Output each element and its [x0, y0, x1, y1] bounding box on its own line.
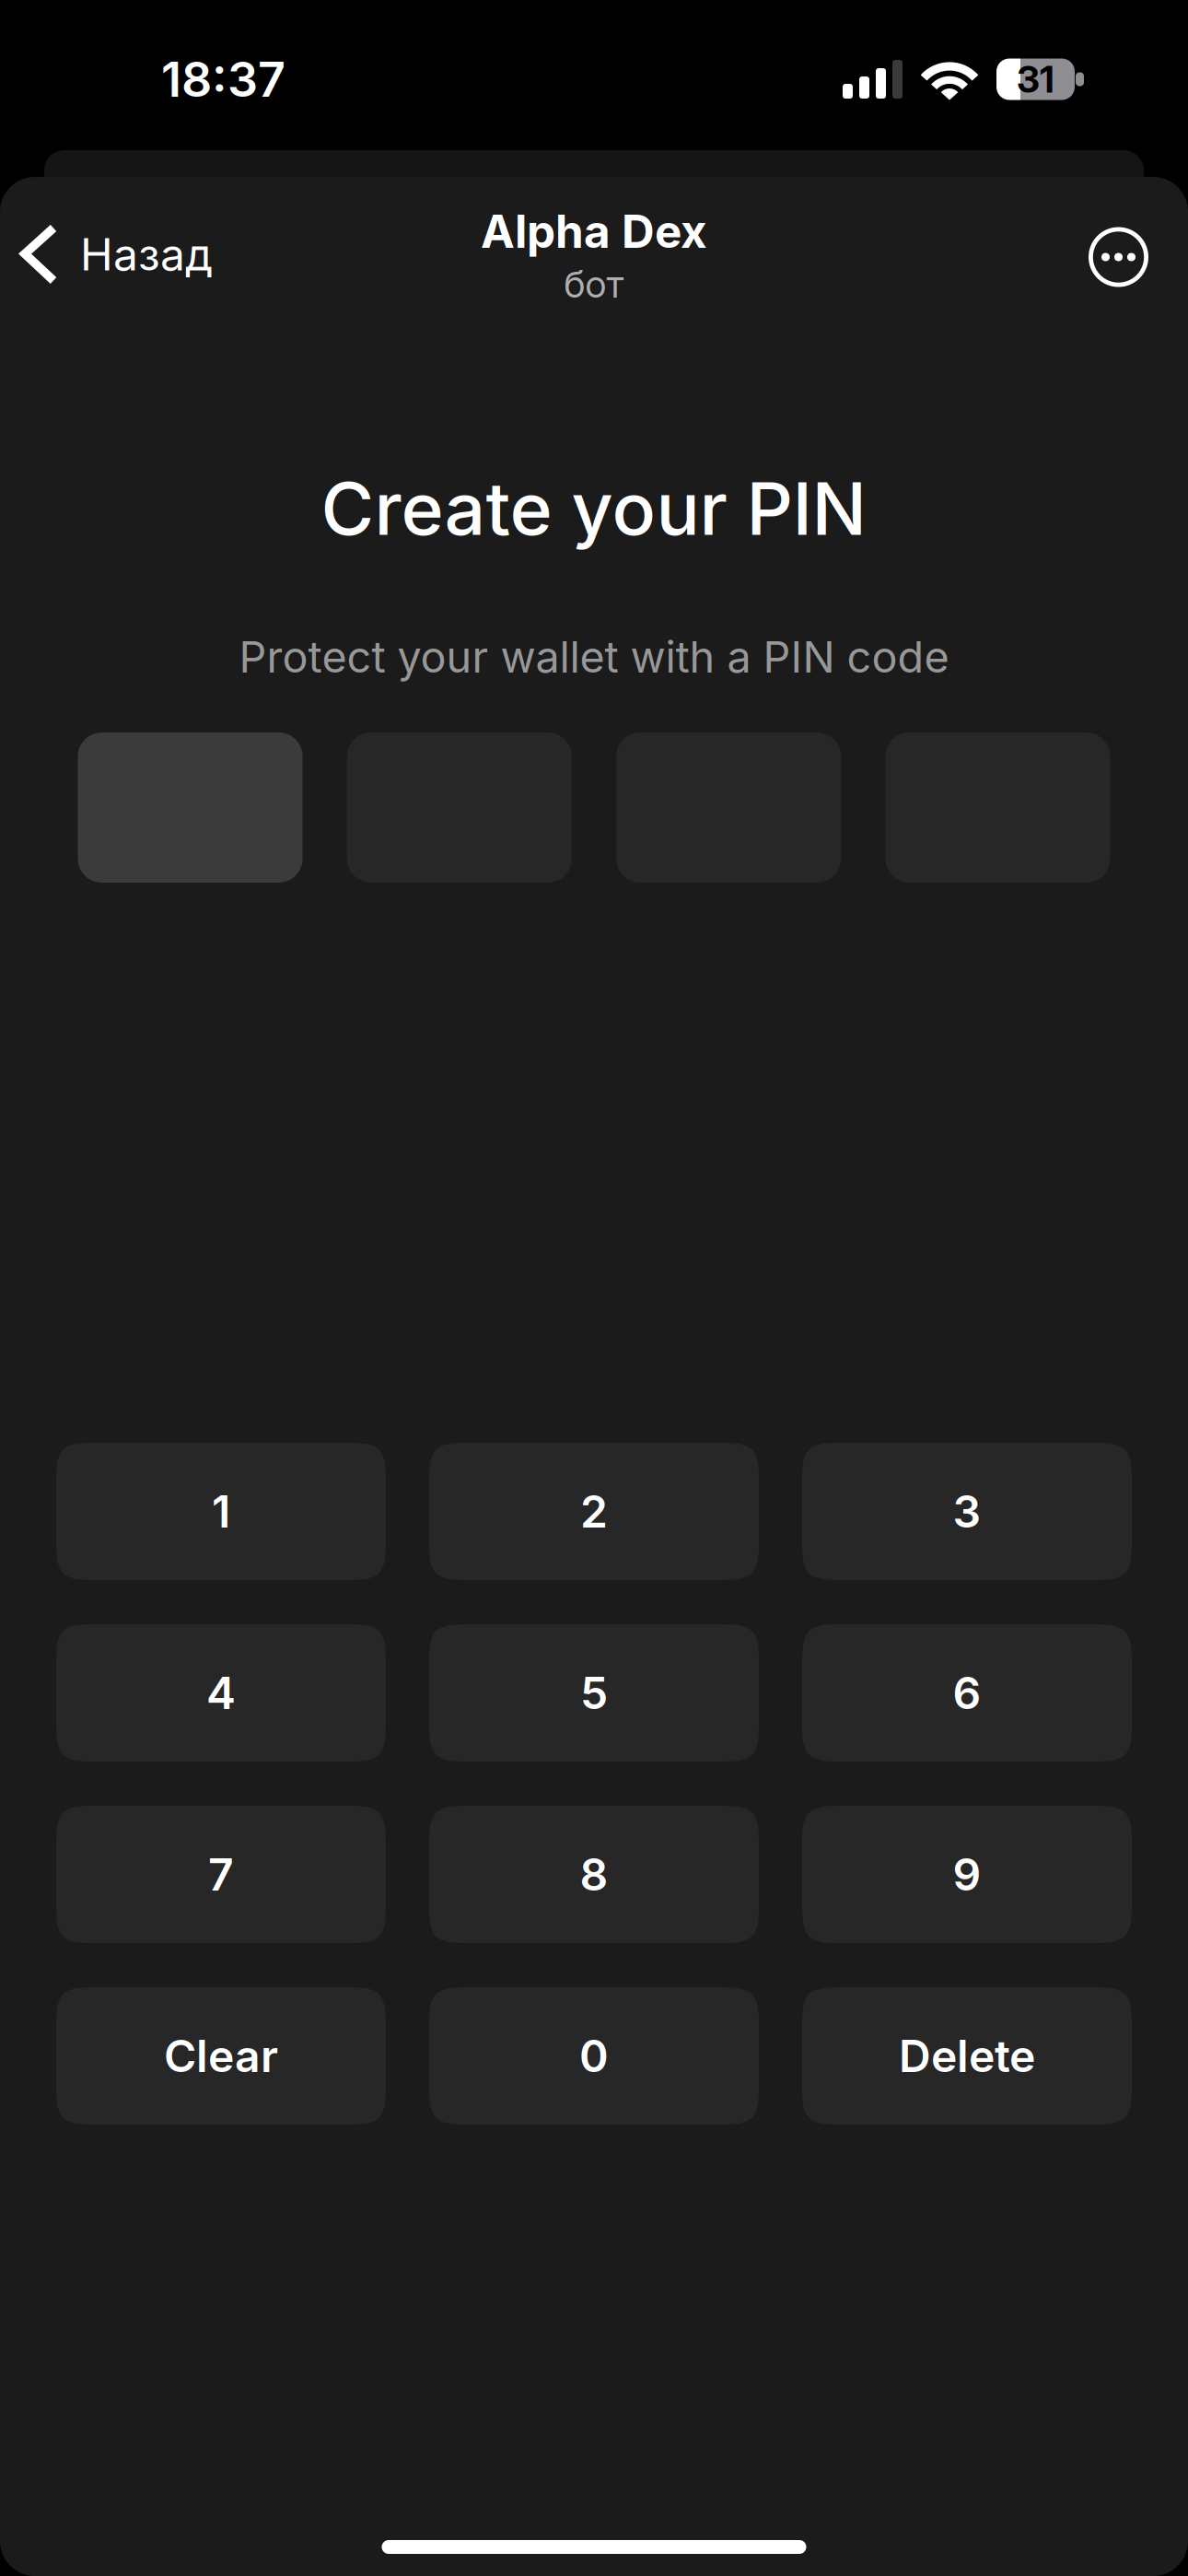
staticText: 9 [953, 1848, 981, 1901]
staticText: 4 [206, 1666, 236, 1720]
staticText: Create your PIN [321, 465, 867, 552]
staticText: Clear [164, 2029, 278, 2083]
button[interactable]: 2 [429, 1443, 759, 1580]
button[interactable]: 7 [56, 1806, 386, 1943]
staticText: 31 [1017, 57, 1054, 102]
staticText: Protect your wallet with a PIN code [239, 631, 949, 683]
staticText: 5 [580, 1666, 608, 1720]
staticText: 18:37 [161, 50, 285, 108]
button[interactable]: 5 [429, 1624, 759, 1762]
staticText: Назад [80, 228, 213, 281]
staticText: бот [564, 261, 624, 307]
staticText: 7 [208, 1848, 234, 1901]
button[interactable]: 9 [802, 1806, 1132, 1943]
staticText: Delete [899, 2029, 1035, 2083]
staticText: Alpha Dex [481, 204, 707, 259]
button[interactable]: 4 [56, 1624, 386, 1762]
staticText: 1 [212, 1485, 230, 1538]
staticText: 3 [953, 1485, 981, 1538]
button[interactable]: More options [1089, 208, 1188, 300]
staticText: 0 [579, 2029, 609, 2083]
button[interactable]: 6 [802, 1624, 1132, 1762]
staticText: 6 [953, 1666, 981, 1720]
button[interactable]: 8 [429, 1806, 759, 1943]
button[interactable]: Clear [56, 1987, 386, 2125]
button[interactable]: Назад [0, 208, 235, 300]
staticText: 2 [580, 1485, 608, 1538]
button[interactable]: 0 [429, 1987, 759, 2125]
button[interactable]: 3 [802, 1443, 1132, 1580]
staticText: 8 [580, 1848, 608, 1901]
button[interactable]: 1 [56, 1443, 386, 1580]
button[interactable]: Delete [802, 1987, 1132, 2125]
